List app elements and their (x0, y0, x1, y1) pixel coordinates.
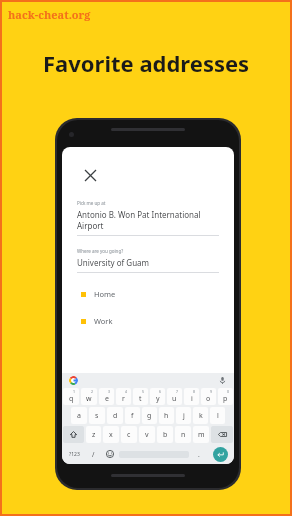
button[interactable]: 8 (184, 388, 199, 405)
staticText: 9 (210, 389, 213, 394)
button[interactable]: m (193, 426, 209, 443)
staticText: k (199, 411, 203, 421)
staticText: u (172, 394, 177, 404)
button[interactable]: Home (62, 286, 234, 302)
button[interactable]: 4 (116, 388, 131, 405)
button[interactable]: . (191, 445, 206, 463)
staticText: / (92, 450, 95, 459)
staticText: 5 (142, 389, 145, 394)
button[interactable]: x (103, 426, 119, 443)
staticText: c (127, 430, 131, 440)
button[interactable]: 9 (201, 388, 216, 405)
button[interactable]: n (175, 426, 191, 443)
staticText: s (95, 411, 99, 421)
staticText: m (198, 430, 205, 440)
staticText: i (191, 394, 193, 404)
staticText: z (92, 430, 96, 440)
staticText: 8 (193, 389, 196, 394)
button[interactable]: 7 (167, 388, 182, 405)
button[interactable]: g (142, 407, 157, 424)
button[interactable]: 3 (99, 388, 114, 405)
staticText: h (164, 411, 169, 421)
staticText: r (122, 394, 125, 404)
staticText: t (139, 394, 142, 404)
button[interactable]: 6 (150, 388, 165, 405)
button[interactable]: h (159, 407, 174, 424)
staticText: 3 (108, 389, 111, 394)
staticText: 0 (227, 389, 230, 394)
button[interactable]: Close (78, 163, 102, 187)
button[interactable]: s (89, 407, 105, 424)
staticText: a (77, 411, 81, 421)
button[interactable]: k (193, 407, 208, 424)
staticText: Home (94, 289, 116, 299)
staticText: Favorite addresses (43, 48, 250, 78)
staticText: l (217, 411, 219, 421)
button[interactable]: Emoji (102, 445, 117, 463)
staticText: x (109, 430, 113, 440)
button[interactable]: z (86, 426, 101, 443)
staticText: j (183, 411, 185, 421)
button[interactable]: d (107, 407, 123, 424)
staticText: d (113, 411, 118, 421)
staticText: 6 (159, 389, 162, 394)
button[interactable]: j (176, 407, 191, 424)
button[interactable]: 0 (218, 388, 233, 405)
button[interactable]: / (87, 445, 100, 463)
button[interactable]: l (210, 407, 225, 424)
staticText: v (145, 430, 149, 440)
staticText: o (206, 394, 211, 404)
button[interactable]: f (125, 407, 140, 424)
button[interactable]: Enter (213, 447, 228, 462)
staticText: 4 (125, 389, 128, 394)
staticText: q (69, 394, 74, 404)
staticText: y (156, 394, 160, 404)
staticText: w (86, 394, 92, 404)
staticText: Work (94, 316, 113, 326)
staticText: b (163, 430, 168, 440)
button[interactable]: Voice input (217, 375, 227, 385)
staticText: 7 (176, 389, 179, 394)
staticText: 2 (91, 389, 94, 394)
staticText: f (131, 411, 134, 421)
staticText: hack-cheat.org (8, 7, 91, 22)
staticText: 1 (73, 389, 76, 394)
button[interactable]: c (121, 426, 137, 443)
button[interactable]: 1 (63, 388, 79, 405)
button[interactable]: ?123 (63, 445, 85, 463)
button[interactable]: b (157, 426, 173, 443)
button[interactable]: v (139, 426, 155, 443)
staticText: ?123 (69, 451, 80, 458)
staticText: Antonio B. Won Pat International Airport (77, 209, 219, 231)
button[interactable]: 2 (81, 388, 97, 405)
staticText: n (181, 430, 186, 440)
staticText: . (198, 450, 200, 459)
button[interactable]: Backspace (211, 426, 233, 443)
staticText: University of Guam (77, 257, 150, 268)
staticText: Where are you going? (77, 248, 124, 254)
staticText: e (105, 394, 109, 404)
button[interactable]: Shift (63, 426, 84, 443)
staticText: p (223, 394, 228, 404)
staticText: g (147, 411, 152, 421)
button[interactable]: Google search (69, 376, 78, 385)
button[interactable]: Work (62, 313, 234, 329)
button[interactable]: a (71, 407, 87, 424)
button[interactable]: 5 (133, 388, 148, 405)
staticText: Pick me up at (77, 200, 106, 206)
